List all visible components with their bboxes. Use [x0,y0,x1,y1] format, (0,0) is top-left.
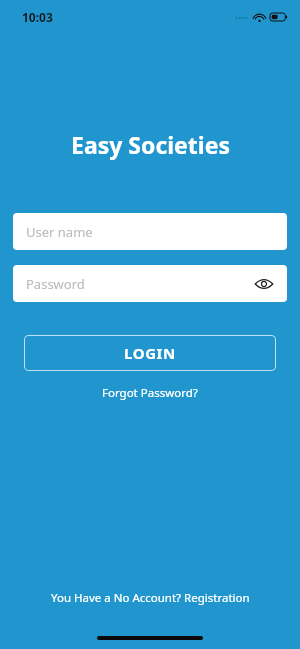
staticText: Password [26,275,85,293]
button[interactable]: User name [13,213,287,250]
staticText: LOGIN [124,343,176,363]
staticText: You Have a No Account? Registration [51,590,250,606]
button[interactable]: LOGIN [24,335,276,371]
button[interactable]: You Have a No Account? Registration [45,588,256,608]
staticText: User name [26,223,93,241]
button[interactable]: Show password [249,269,279,299]
staticText: Forgot Password? [102,385,198,401]
staticText: 10:03 [22,9,53,25]
staticText: Easy Societies [71,129,230,160]
button[interactable]: Password [13,265,287,302]
button[interactable]: Forgot Password? [96,383,204,403]
